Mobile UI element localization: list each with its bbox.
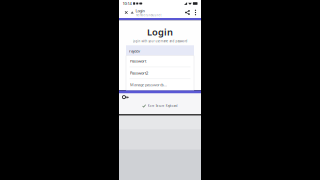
staticText: Passwort [130, 58, 146, 64]
button[interactable]: Close [122, 7, 130, 18]
button[interactable]: More options [192, 7, 199, 18]
button[interactable]: Share [183, 7, 192, 18]
staticText: Manage passwords… [130, 82, 167, 87]
staticText: Login with your username and password [132, 39, 187, 43]
staticText: 10:14 [122, 1, 131, 6]
staticText: Login [135, 8, 144, 13]
staticText: Passwort2 [130, 70, 148, 75]
button[interactable]: rajeev [126, 45, 194, 57]
staticText: members.nexus.net [135, 13, 161, 17]
button[interactable]: Manage passwords… [126, 79, 194, 90]
button[interactable]: Passwort [126, 55, 194, 67]
button[interactable]: Kore Secure Keyboard [142, 103, 178, 109]
staticText: rajeev [129, 48, 140, 54]
button[interactable]: Passwort2 [126, 67, 194, 79]
staticText: Kore Secure Keyboard [148, 104, 178, 108]
staticText: Login [147, 26, 173, 38]
button[interactable]: Login [130, 7, 161, 18]
